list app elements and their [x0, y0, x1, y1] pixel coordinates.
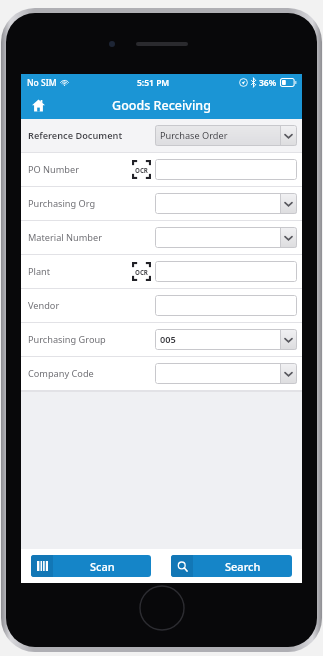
- staticText: Reference Document: [28, 129, 123, 142]
- staticText: Purchase Order: [160, 129, 228, 142]
- staticText: OCR: [135, 166, 148, 174]
- button[interactable]: [155, 363, 297, 384]
- staticText: Goods Receiving: [112, 97, 211, 114]
- button[interactable]: [155, 159, 297, 180]
- button[interactable]: [155, 295, 297, 316]
- button[interactable]: [155, 261, 297, 282]
- button[interactable]: Plant: [21, 255, 302, 288]
- staticText: 005: [160, 333, 176, 346]
- button[interactable]: PO Number: [21, 153, 302, 186]
- button[interactable]: Company Code: [21, 357, 302, 390]
- button[interactable]: Scan: [31, 555, 151, 577]
- button[interactable]: Scan with OCR: [131, 159, 152, 180]
- button[interactable]: Purchase Order: [155, 125, 297, 146]
- button[interactable]: 005: [155, 329, 297, 350]
- button[interactable]: Reference Document: [21, 119, 302, 152]
- staticText: Material Number: [28, 231, 102, 244]
- staticText: Vendor: [28, 299, 60, 312]
- button[interactable]: Material Number: [21, 221, 302, 254]
- staticText: Search: [225, 559, 261, 574]
- staticText: OCR: [135, 268, 148, 276]
- button[interactable]: Home: [25, 92, 51, 118]
- staticText: 36%: [259, 77, 277, 89]
- staticText: Scan: [90, 559, 115, 574]
- button[interactable]: Search: [171, 555, 292, 577]
- button[interactable]: Purchasing Group: [21, 323, 302, 356]
- staticText: Purchasing Org: [28, 197, 96, 210]
- staticText: Company Code: [28, 367, 94, 380]
- button[interactable]: Vendor: [21, 289, 302, 322]
- staticText: Plant: [28, 265, 51, 278]
- button[interactable]: [155, 227, 297, 248]
- staticText: No SIM: [27, 77, 57, 89]
- button[interactable]: Purchasing Org: [21, 187, 302, 220]
- staticText: 5:51 PM: [137, 77, 170, 89]
- button[interactable]: Scan with OCR: [131, 261, 152, 282]
- staticText: PO Number: [28, 163, 79, 176]
- button[interactable]: [155, 193, 297, 214]
- staticText: Purchasing Group: [28, 333, 106, 346]
